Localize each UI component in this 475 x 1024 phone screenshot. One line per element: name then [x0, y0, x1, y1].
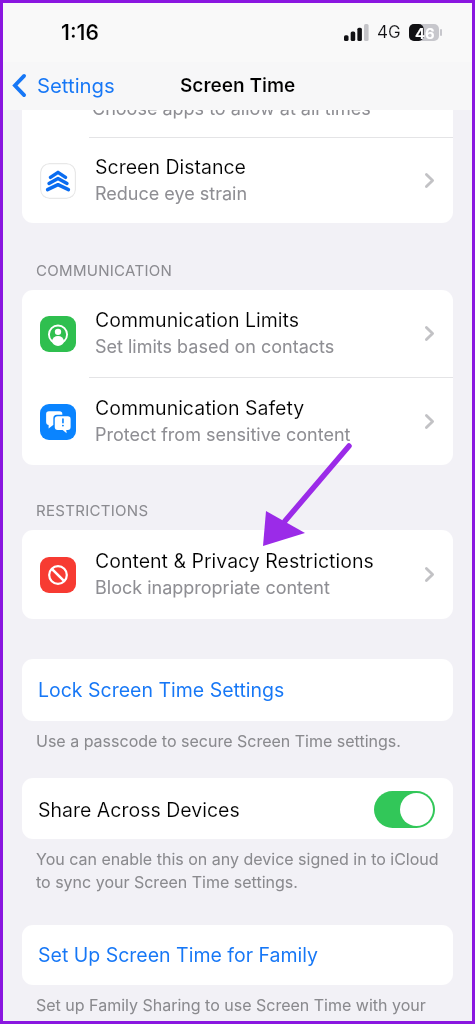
staticText: Set Up Screen Time for Family — [38, 943, 319, 967]
staticText: Reduce eye strain — [95, 183, 248, 205]
staticText: 4G — [377, 22, 401, 43]
staticText: Use a passcode to secure Screen Time set… — [36, 731, 401, 750]
staticText: 1:16 — [61, 20, 99, 45]
button[interactable]: Set Up Screen Time for Family — [22, 925, 453, 985]
staticText: Block inappropriate content — [95, 577, 330, 599]
staticText: Protect from sensitive content — [95, 424, 351, 446]
staticText: Set limits based on contacts — [95, 336, 335, 358]
staticText: Screen Time — [180, 74, 296, 97]
staticText: Lock Screen Time Settings — [38, 678, 285, 702]
button[interactable]: Choose apps to allow at all times — [22, 110, 453, 137]
staticText: Screen Distance — [95, 155, 246, 179]
button[interactable]: Lock Screen Time Settings — [22, 659, 453, 721]
staticText: You can enable this on any device signed… — [36, 849, 445, 892]
staticText: Settings — [37, 73, 115, 98]
button[interactable]: Communication Limits — [22, 290, 453, 377]
staticText: 46 — [415, 24, 435, 41]
other: Back — [13, 74, 26, 97]
staticText: Communication Safety — [95, 396, 305, 420]
button[interactable]: Screen Distance — [22, 138, 453, 223]
staticText: RESTRICTIONS — [36, 501, 149, 519]
button[interactable]: Communication Safety — [22, 378, 453, 465]
button[interactable]: Back — [3, 74, 123, 99]
staticText: Communication Limits — [95, 308, 299, 332]
button[interactable]: Content & Privacy Restrictions — [22, 530, 453, 619]
staticText: Share Across Devices — [38, 798, 374, 822]
staticText: Choose apps to allow at all times — [92, 110, 371, 120]
button[interactable]: Share Across Devices — [22, 778, 453, 839]
staticText: Content & Privacy Restrictions — [95, 549, 374, 573]
staticText: Set up Family Sharing to use Screen Time… — [36, 995, 426, 1014]
staticText: COMMUNICATION — [36, 261, 173, 279]
